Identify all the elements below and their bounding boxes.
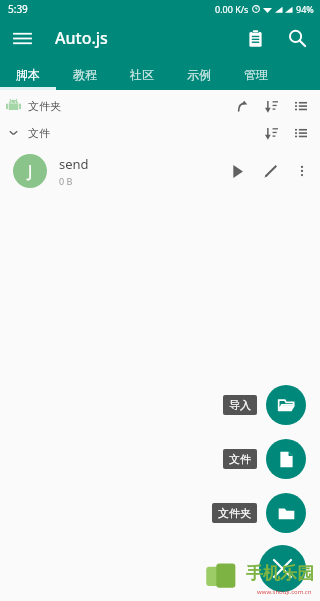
staticText: 手机乐园 xyxy=(246,563,314,584)
button[interactable]: 示例 xyxy=(170,58,227,90)
button[interactable]: 文件夹 xyxy=(0,92,320,119)
staticText: J xyxy=(28,160,33,182)
button[interactable]: 管理 xyxy=(227,58,284,90)
button[interactable]: More options xyxy=(288,157,316,185)
button[interactable]: New file xyxy=(266,439,306,479)
button[interactable]: Close menu xyxy=(259,545,306,592)
button[interactable]: 文件 xyxy=(0,119,320,146)
staticText: 5:39 xyxy=(8,2,28,16)
button[interactable]: Sort xyxy=(258,120,284,146)
button[interactable]: Open navigation drawer xyxy=(6,22,38,54)
staticText: 文件 xyxy=(229,452,251,466)
staticText: 管理 xyxy=(244,67,268,82)
button[interactable]: Search xyxy=(280,21,314,55)
button[interactable]: 社区 xyxy=(113,58,170,90)
button[interactable]: J xyxy=(0,146,320,195)
button[interactable]: Sort xyxy=(258,93,284,119)
button[interactable]: 教程 xyxy=(56,58,113,90)
button[interactable]: Run script xyxy=(222,156,252,186)
staticText: 0.00 K/s xyxy=(215,3,249,15)
button[interactable]: New folder xyxy=(266,493,306,533)
staticText: 脚本 xyxy=(16,67,40,82)
button[interactable]: 脚本 xyxy=(0,58,56,90)
staticText: 0 B xyxy=(59,175,73,187)
staticText: 文件夹 xyxy=(218,506,251,520)
staticText: send xyxy=(59,155,89,173)
button[interactable]: 文件 xyxy=(223,449,257,469)
staticText: 社区 xyxy=(130,67,154,82)
button[interactable]: 导入 xyxy=(223,395,257,415)
button[interactable]: Edit script xyxy=(256,156,286,186)
staticText: 94% xyxy=(296,3,314,15)
staticText: www.shouji.com.cn xyxy=(257,588,312,596)
staticText: 示例 xyxy=(187,67,211,82)
button[interactable]: 文件夹 xyxy=(212,503,257,523)
button[interactable]: Import xyxy=(266,385,306,425)
button[interactable]: View mode xyxy=(288,93,314,119)
button[interactable]: Go up xyxy=(228,93,254,119)
staticText: 文件夹 xyxy=(28,99,61,113)
button[interactable]: View mode xyxy=(288,120,314,146)
staticText: 导入 xyxy=(229,398,251,412)
staticText: Auto.js xyxy=(55,27,108,49)
staticText: 文件 xyxy=(28,126,50,140)
button[interactable]: Logs xyxy=(238,21,272,55)
staticText: 教程 xyxy=(73,67,97,82)
